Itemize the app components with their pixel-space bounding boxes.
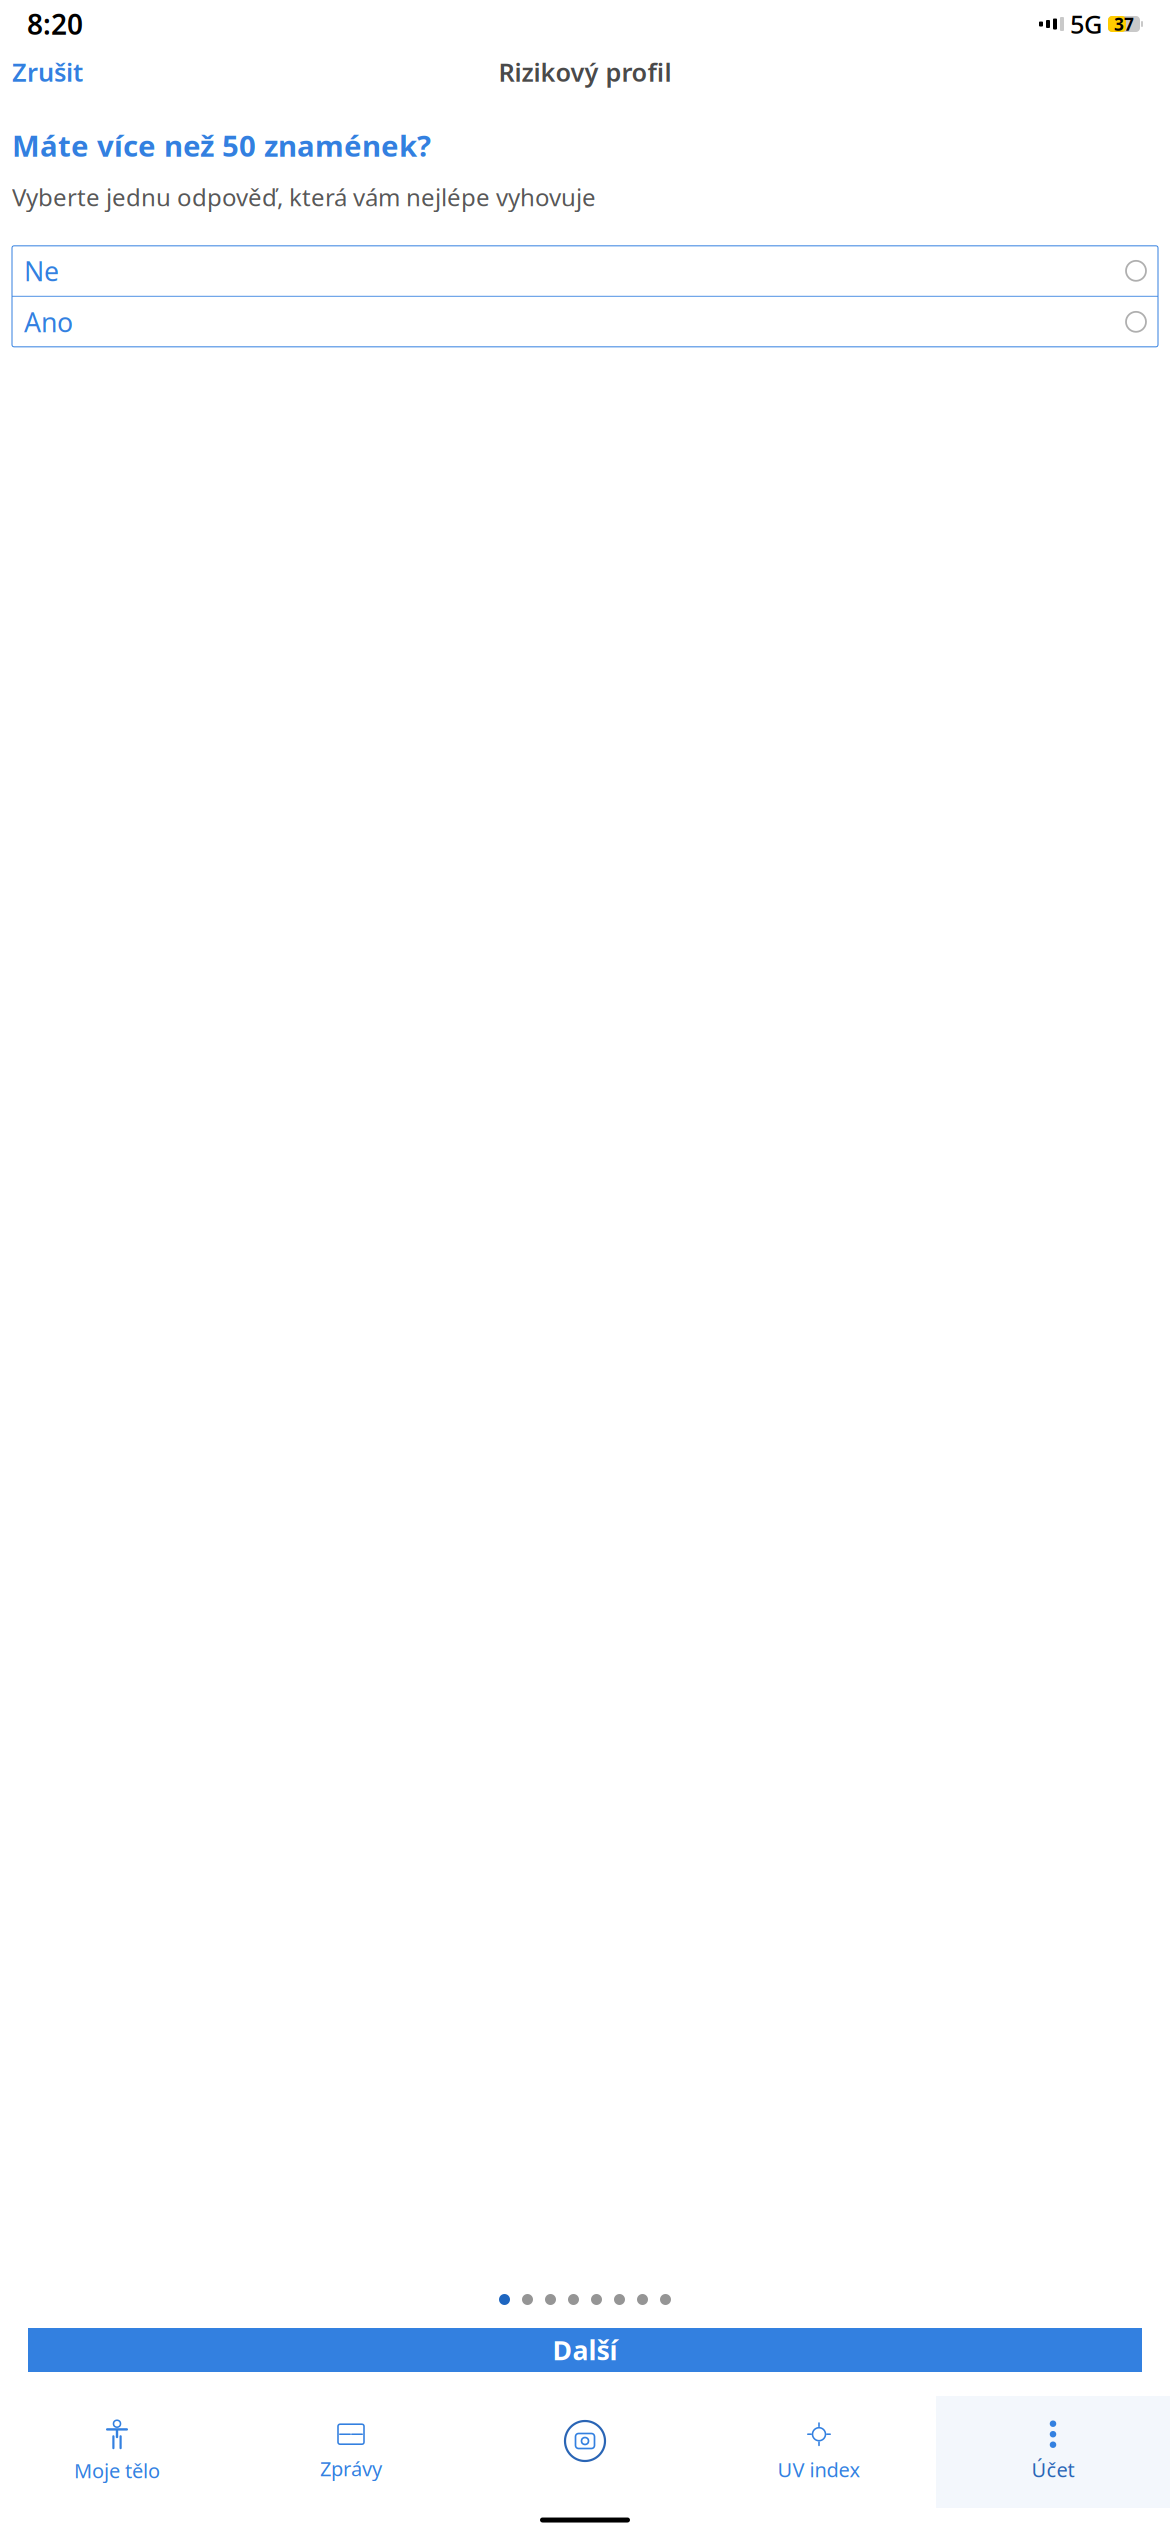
staticText: Moje tělo <box>74 2457 160 2484</box>
staticText: Ne <box>24 253 59 288</box>
button[interactable]: Moje tělo <box>0 2396 234 2508</box>
staticText: Zprávy <box>320 2455 382 2482</box>
staticText: 5G <box>1070 7 1102 41</box>
staticText: UV index <box>777 2456 860 2483</box>
staticText: 37 <box>1114 12 1134 35</box>
staticText: Vyberte jednu odpověď, která vám nejlépe… <box>12 181 596 213</box>
button[interactable]: Zrušit <box>0 47 95 97</box>
button[interactable]: Ano <box>12 297 1158 347</box>
button[interactable]: Účet <box>936 2396 1170 2508</box>
button[interactable]: Zprávy <box>234 2396 468 2508</box>
staticText: Účet <box>1031 2456 1074 2483</box>
button[interactable]: Camera <box>468 2396 702 2508</box>
button[interactable]: Ne <box>12 246 1158 296</box>
button[interactable]: UV index <box>702 2396 936 2508</box>
staticText: Další <box>552 2332 617 2368</box>
staticText: Máte více než 50 znamének? <box>12 126 431 165</box>
staticText: Rizikový profil <box>498 55 671 89</box>
staticText: 8:20 <box>27 5 83 43</box>
staticText: Ano <box>24 304 73 339</box>
button[interactable]: Další <box>28 2328 1142 2372</box>
staticText: Zrušit <box>12 55 83 89</box>
